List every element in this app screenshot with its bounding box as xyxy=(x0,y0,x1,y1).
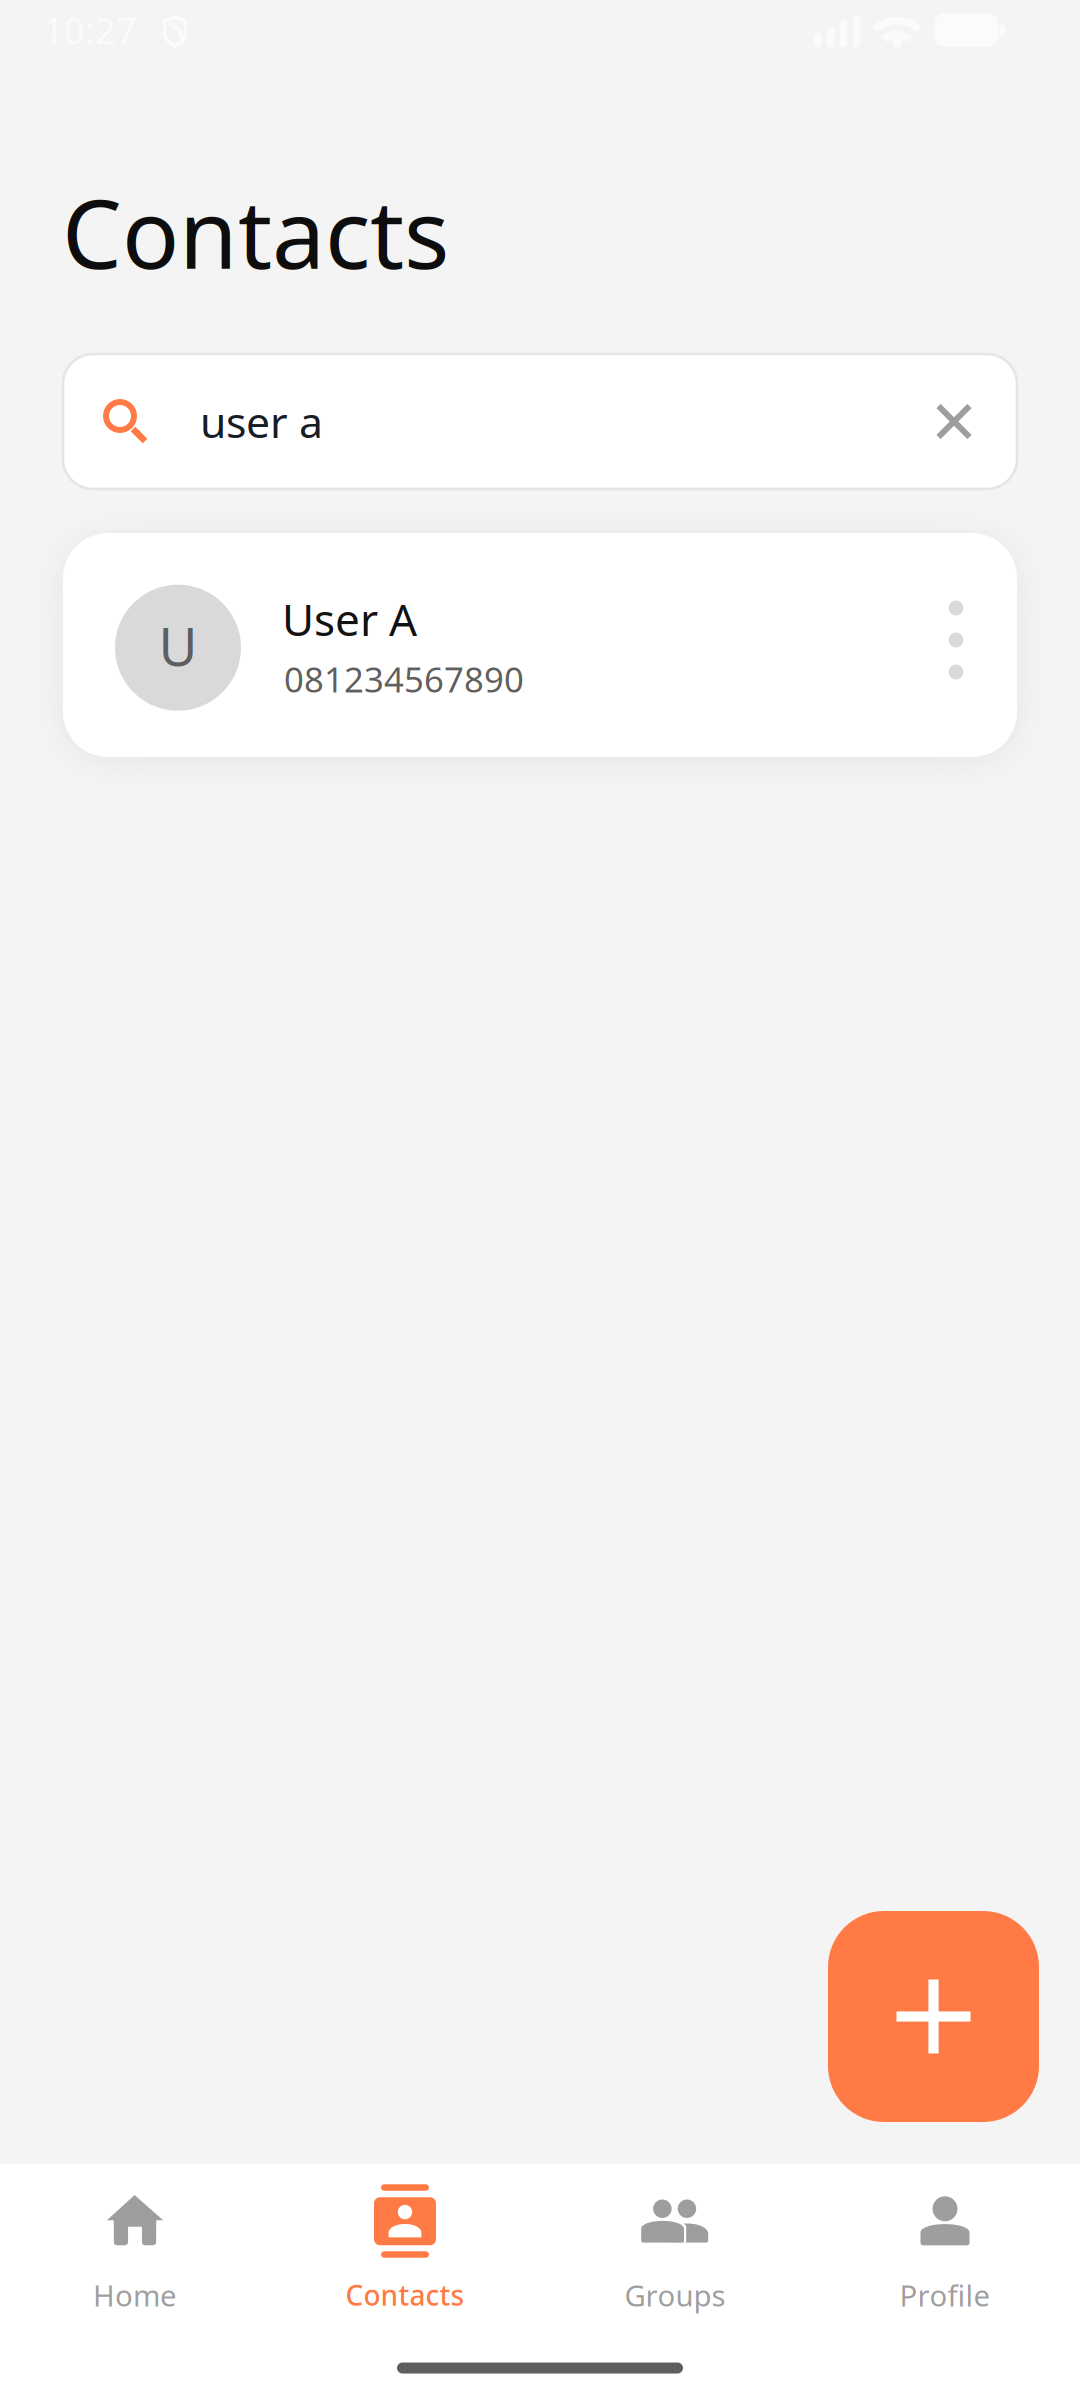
staticText: Contacts xyxy=(345,2276,464,2314)
button[interactable]: Add contact xyxy=(828,1911,1039,2122)
button[interactable]: Clear search xyxy=(899,354,1009,489)
button[interactable]: More options xyxy=(911,575,1001,705)
staticText: Home xyxy=(93,2275,177,2314)
button[interactable]: Contacts xyxy=(270,2164,540,2400)
staticText: Groups xyxy=(624,2275,725,2314)
button[interactable]: Groups xyxy=(540,2164,810,2400)
staticText: 081234567890 xyxy=(284,656,524,702)
staticText: Profile xyxy=(899,2275,990,2314)
staticText: user a xyxy=(200,393,323,450)
staticText: Contacts xyxy=(62,169,449,295)
staticText: U xyxy=(158,610,197,681)
button[interactable]: Home xyxy=(0,2164,270,2400)
button[interactable]: User A, 081234567890 xyxy=(63,533,1017,757)
button[interactable]: Profile xyxy=(810,2164,1080,2400)
staticText: User A xyxy=(282,590,417,648)
